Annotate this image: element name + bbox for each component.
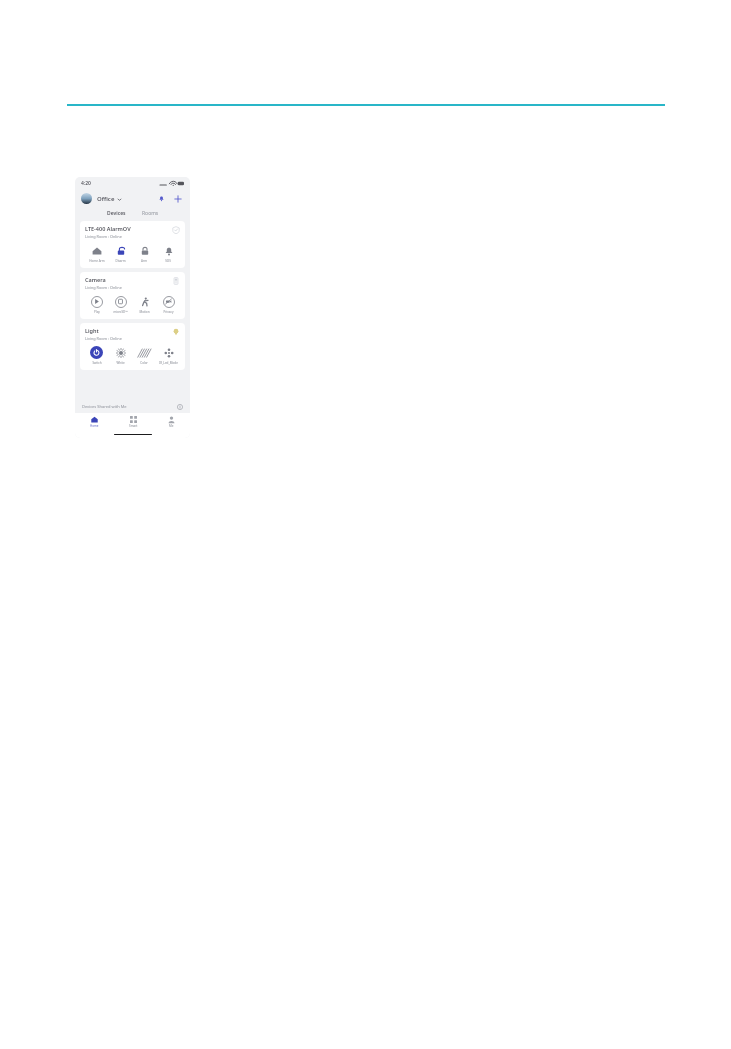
staticText: Rooms bbox=[142, 210, 159, 217]
button[interactable]: Smart bbox=[114, 413, 152, 430]
button[interactable]: Disarm bbox=[108, 243, 132, 264]
button[interactable]: Office bbox=[97, 195, 122, 203]
button[interactable]: Arm bbox=[132, 243, 156, 264]
staticText: White bbox=[116, 361, 125, 365]
staticText: Living Room : Online bbox=[85, 234, 122, 239]
staticText: Me bbox=[169, 424, 174, 428]
button[interactable]: Color bbox=[132, 345, 156, 366]
button[interactable]: Motion bbox=[132, 294, 156, 315]
staticText: Switch bbox=[92, 361, 102, 365]
staticText: Smart bbox=[129, 424, 138, 428]
button[interactable]: Home Arm bbox=[85, 243, 108, 264]
button[interactable]: Rooms bbox=[134, 209, 167, 218]
button[interactable]: Switch bbox=[85, 345, 108, 366]
staticText: Office bbox=[97, 195, 115, 203]
staticText: Living Room : Online bbox=[85, 336, 122, 341]
button[interactable]: microSD™ bbox=[108, 294, 132, 315]
button[interactable]: Privacy bbox=[156, 294, 180, 315]
button[interactable]: Home bbox=[75, 413, 114, 430]
staticText: Living Room : Online bbox=[85, 285, 122, 290]
staticText: 4:20 bbox=[81, 180, 91, 187]
button[interactable]: IR_Led_Mode bbox=[156, 345, 180, 366]
button[interactable]: Add device bbox=[171, 192, 184, 205]
staticText: Disarm bbox=[115, 259, 126, 263]
staticText: Devices Shared with Me bbox=[82, 404, 127, 409]
button[interactable]: Me bbox=[152, 413, 190, 430]
button[interactable]: SOS bbox=[156, 243, 180, 264]
staticText: LTE-400 AlarmOV bbox=[85, 225, 131, 232]
staticText: IR_Led_Mode bbox=[159, 361, 178, 365]
staticText: Arm bbox=[141, 259, 147, 263]
staticText: Color bbox=[140, 361, 148, 365]
button[interactable]: Light bbox=[80, 323, 185, 370]
staticText: Camera bbox=[85, 276, 106, 283]
staticText: Light bbox=[85, 327, 99, 334]
button[interactable]: White bbox=[108, 345, 132, 366]
staticText: Motion bbox=[139, 310, 150, 314]
staticText: microSD™ bbox=[113, 310, 128, 314]
button[interactable]: LTE-400 AlarmOV bbox=[80, 221, 185, 268]
button[interactable]: Camera bbox=[80, 272, 185, 319]
staticText: Privacy bbox=[163, 310, 174, 314]
button[interactable]: Play bbox=[85, 294, 108, 315]
staticText: Devices bbox=[107, 210, 126, 217]
button[interactable]: Notifications bbox=[155, 192, 168, 205]
staticText: SOS bbox=[165, 259, 171, 263]
button[interactable]: Devices bbox=[99, 209, 134, 218]
staticText: Home bbox=[90, 424, 99, 428]
button[interactable]: Profile bbox=[81, 193, 92, 204]
staticText: Home Arm bbox=[89, 259, 105, 263]
staticText: Play bbox=[94, 310, 100, 314]
button[interactable]: Devices Shared with Me bbox=[82, 400, 183, 413]
